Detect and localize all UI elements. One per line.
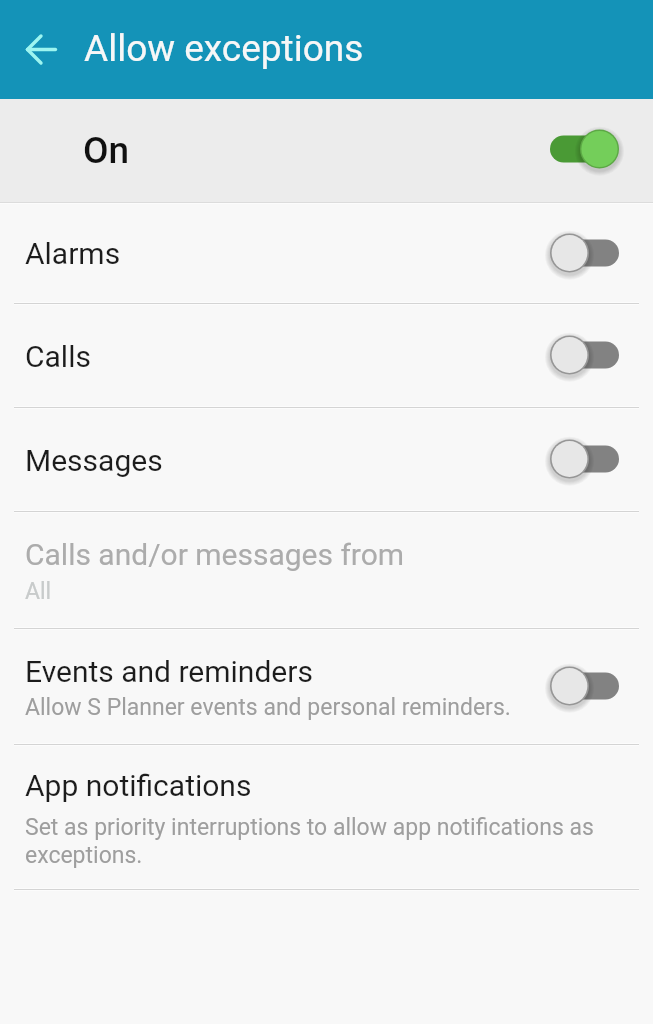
- staticText: Alarms: [25, 236, 121, 271]
- staticText: On: [83, 129, 130, 172]
- button[interactable]: Navigate up: [6, 17, 72, 83]
- button[interactable]: Turn on: [550, 437, 619, 481]
- button[interactable]: On: [0, 99, 653, 202]
- button[interactable]: Alarms: [0, 202, 653, 303]
- staticText: App notifications: [25, 768, 252, 803]
- button[interactable]: Turn on: [550, 231, 619, 275]
- staticText: Allow exceptions: [84, 27, 364, 70]
- staticText: Allow S Planner events and personal remi…: [25, 694, 511, 721]
- button[interactable]: Turn on: [550, 333, 619, 377]
- button[interactable]: Calls: [0, 303, 653, 407]
- button[interactable]: Events and reminders: [0, 628, 653, 744]
- staticText: Set as priority interruptions to allow a…: [25, 813, 600, 869]
- staticText: Calls: [25, 339, 91, 374]
- button[interactable]: Turn off: [550, 127, 619, 171]
- button[interactable]: App notifications: [0, 744, 653, 889]
- staticText: Messages: [25, 443, 163, 478]
- staticText: Calls and/or messages from: [25, 537, 405, 572]
- staticText: Events and reminders: [25, 654, 313, 689]
- staticText: All: [25, 578, 52, 605]
- button[interactable]: Turn on: [550, 664, 619, 708]
- button[interactable]: Messages: [0, 407, 653, 511]
- button[interactable]: Calls and/or messages from: [0, 511, 653, 628]
